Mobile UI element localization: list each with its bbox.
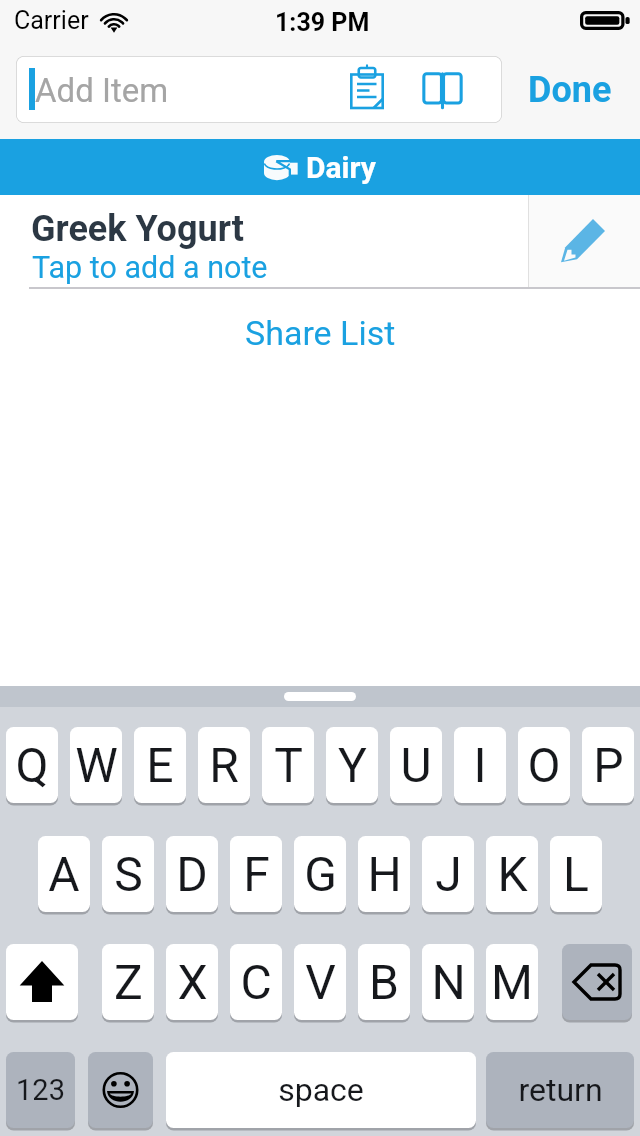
button[interactable]: N	[422, 944, 474, 1020]
button[interactable]: W	[70, 727, 122, 803]
button[interactable]: X	[166, 944, 218, 1020]
button[interactable]: H	[358, 836, 410, 912]
button[interactable]: M	[486, 944, 538, 1020]
staticText: U	[400, 737, 432, 793]
staticText: I	[473, 737, 487, 793]
staticText: 123	[16, 1073, 65, 1107]
button[interactable]: Y	[326, 727, 378, 803]
staticText: 1:39 PM	[275, 8, 370, 37]
staticText: N	[431, 954, 466, 1010]
button[interactable]: O	[518, 727, 570, 803]
button[interactable]: Backspace	[562, 944, 632, 1020]
button[interactable]: Share List	[0, 303, 640, 363]
staticText: R	[209, 737, 239, 793]
button[interactable]: return	[486, 1052, 634, 1128]
button[interactable]: Dismiss keyboard	[284, 692, 356, 701]
button[interactable]: Done	[510, 56, 630, 123]
staticText: space	[278, 1071, 364, 1109]
button[interactable]: Emoji	[88, 1052, 153, 1128]
button[interactable]: Z	[102, 944, 154, 1020]
staticText: A	[48, 846, 80, 902]
button[interactable]: A	[38, 836, 90, 912]
button[interactable]: B	[358, 944, 410, 1020]
staticText: Add Item	[35, 71, 169, 110]
staticText: G	[304, 846, 337, 902]
button[interactable]: R	[198, 727, 250, 803]
button[interactable]: 123	[6, 1052, 75, 1128]
button[interactable]: G	[294, 836, 346, 912]
staticText: P	[593, 737, 624, 793]
button[interactable]: Edit note	[528, 195, 640, 289]
button[interactable]: V	[294, 944, 346, 1020]
staticText: Done	[528, 69, 612, 111]
button[interactable]: K	[486, 836, 538, 912]
button[interactable]: Lists	[338, 56, 396, 116]
button[interactable]: L	[550, 836, 602, 912]
staticText: O	[527, 737, 561, 793]
button[interactable]: U	[390, 727, 442, 803]
staticText: W	[75, 737, 118, 793]
staticText: D	[176, 846, 208, 902]
button[interactable]: space	[166, 1052, 476, 1128]
button[interactable]: S	[102, 836, 154, 912]
staticText: B	[369, 954, 399, 1010]
button[interactable]: Recipes	[413, 60, 471, 120]
staticText: Share List	[245, 313, 396, 353]
staticText: X	[177, 954, 208, 1010]
staticText: Dairy	[306, 150, 376, 185]
staticText: T	[274, 737, 303, 793]
staticText: K	[497, 846, 528, 902]
staticText: Z	[114, 954, 143, 1010]
button[interactable]: Shift	[6, 944, 78, 1020]
button[interactable]: C	[230, 944, 282, 1020]
staticText: V	[305, 954, 336, 1010]
staticText: C	[240, 954, 272, 1010]
staticText: M	[491, 954, 533, 1010]
staticText: J	[435, 846, 462, 902]
button[interactable]: Q	[6, 727, 58, 803]
staticText: return	[518, 1071, 603, 1109]
button[interactable]: D	[166, 836, 218, 912]
staticText: Tap to add a note	[32, 250, 268, 286]
button[interactable]: Add Item	[16, 56, 502, 123]
staticText: H	[367, 846, 402, 902]
button[interactable]: Dairy	[0, 139, 640, 195]
button[interactable]: F	[230, 836, 282, 912]
button[interactable]: P	[582, 727, 634, 803]
staticText: Greek Yogurt	[31, 208, 244, 250]
button[interactable]: I	[454, 727, 506, 803]
staticText: S	[114, 846, 143, 902]
button[interactable]: E	[134, 727, 186, 803]
button[interactable]: J	[422, 836, 474, 912]
staticText: L	[563, 846, 589, 902]
staticText: E	[146, 737, 174, 793]
staticText: Y	[338, 737, 367, 793]
button[interactable]: T	[262, 727, 314, 803]
staticText: Carrier	[14, 6, 89, 35]
staticText: F	[243, 846, 270, 902]
staticText: Q	[15, 737, 49, 793]
